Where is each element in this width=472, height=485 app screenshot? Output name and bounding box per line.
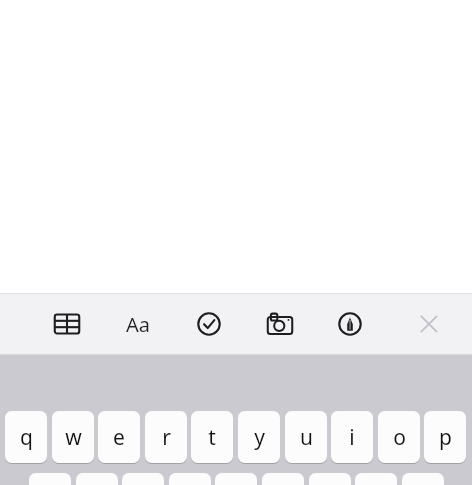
button[interactable]: k xyxy=(355,473,397,485)
staticText: w xyxy=(65,423,82,452)
staticText: r xyxy=(162,423,171,452)
staticText: q xyxy=(20,423,33,452)
button[interactable]: s xyxy=(76,473,118,485)
button[interactable]: Insert photo xyxy=(254,293,306,355)
button[interactable]: q xyxy=(5,411,47,463)
button[interactable]: w xyxy=(52,411,94,463)
staticText: u xyxy=(300,423,313,452)
staticText: i xyxy=(349,423,355,452)
button[interactable]: y xyxy=(238,411,280,463)
button[interactable]: a xyxy=(29,473,71,485)
staticText: o xyxy=(393,423,406,452)
button[interactable]: Markup xyxy=(324,293,376,355)
button[interactable]: e xyxy=(98,411,140,463)
button[interactable]: d xyxy=(122,473,164,485)
button[interactable]: g xyxy=(215,473,257,485)
button[interactable]: Insert table xyxy=(41,293,93,355)
button[interactable]: h xyxy=(262,473,304,485)
button[interactable]: r xyxy=(145,411,187,463)
button[interactable]: f xyxy=(169,473,211,485)
button[interactable]: i xyxy=(331,411,373,463)
button[interactable]: Close xyxy=(403,293,455,355)
button[interactable]: Text formatting xyxy=(112,293,164,355)
button[interactable]: u xyxy=(285,411,327,463)
button[interactable]: t xyxy=(191,411,233,463)
button[interactable]: o xyxy=(378,411,420,463)
button[interactable]: Checklist xyxy=(183,293,235,355)
button[interactable]: j xyxy=(309,473,351,485)
button[interactable]: l xyxy=(402,473,444,485)
button[interactable]: p xyxy=(424,411,466,463)
staticText: t xyxy=(208,423,216,452)
staticText: e xyxy=(113,423,125,452)
staticText: p xyxy=(439,423,452,452)
staticText: Aa xyxy=(126,311,150,338)
staticText: y xyxy=(254,423,265,452)
